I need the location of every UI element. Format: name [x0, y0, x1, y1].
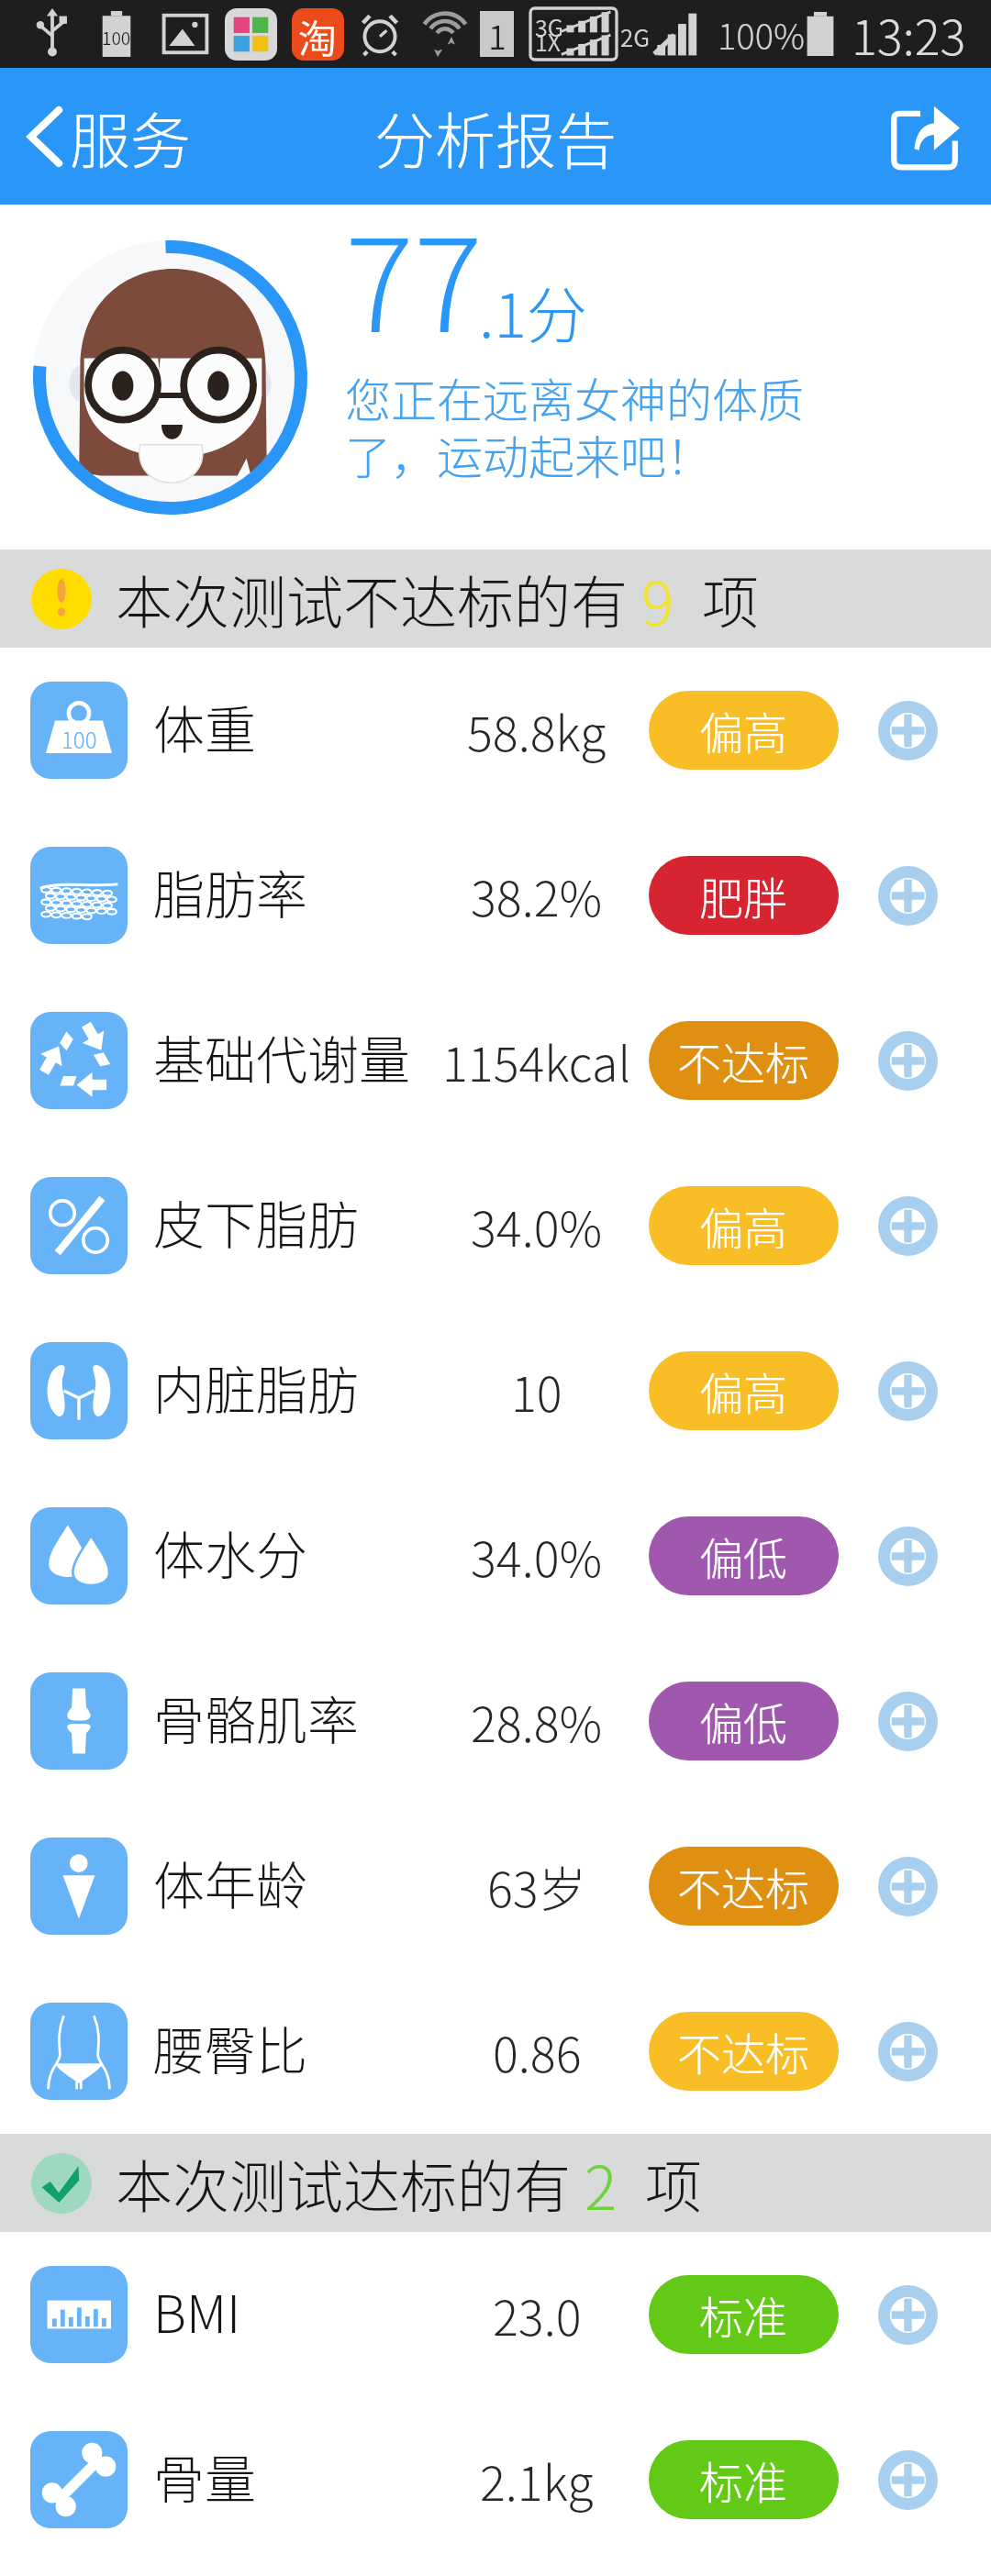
staticText: 100% — [718, 9, 806, 60]
staticText: 脂肪率 — [153, 854, 307, 928]
staticText: 28.8% — [471, 1687, 603, 1756]
staticText: 2.1kg — [480, 2446, 594, 2515]
staticText: 本次测试不达标的有 — [116, 558, 629, 640]
button[interactable]: 体年龄 — [0, 1804, 991, 1969]
staticText: 不达标 — [677, 1854, 810, 1918]
staticText: 58.8kg — [467, 696, 607, 765]
button[interactable]: Add 体水分 — [862, 1510, 954, 1603]
staticText: 0.86 — [493, 2017, 582, 2086]
staticText: 体重 — [153, 689, 256, 763]
staticText: 项 — [645, 2142, 703, 2225]
button[interactable]: Add 皮下脂肪 — [862, 1180, 954, 1272]
staticText: 服务 — [70, 93, 191, 181]
staticText: 本次测试达标的有 — [116, 2142, 572, 2225]
staticText: 分析报告 — [374, 93, 617, 181]
staticText: 2G — [620, 19, 651, 54]
button[interactable]: BMI — [0, 2232, 991, 2397]
staticText: 不达标 — [677, 1028, 810, 1093]
staticText: 体年龄 — [153, 1845, 307, 1919]
staticText: 肥胖 — [699, 863, 788, 927]
button[interactable]: Add 基础代谢量 — [862, 1015, 954, 1107]
staticText: 63岁 — [487, 1852, 586, 1921]
button[interactable]: Share — [861, 81, 991, 193]
button[interactable]: Add 骨量 — [862, 2434, 954, 2526]
button[interactable]: 腰臀比 — [0, 1969, 991, 2134]
staticText: 偏高 — [699, 698, 788, 762]
staticText: 34.0% — [471, 1192, 603, 1260]
staticText: 骨骼肌率 — [153, 1680, 359, 1754]
staticText: 100 — [102, 25, 131, 50]
staticText: 77 — [345, 183, 483, 370]
button[interactable]: Add 脂肪率 — [862, 849, 954, 942]
staticText: 项 — [702, 558, 760, 640]
staticText: 9 — [641, 555, 674, 643]
button[interactable]: Add 体重 — [862, 684, 954, 777]
staticText: 淘 — [298, 8, 338, 61]
staticText: 内脏脂肪 — [153, 1349, 359, 1424]
staticText: 标准 — [699, 2448, 788, 2512]
staticText: 标准 — [699, 2282, 788, 2347]
button[interactable]: Add 腰臀比 — [862, 2005, 954, 2098]
button[interactable]: 基础代谢量 — [0, 978, 991, 1143]
button[interactable]: 体水分 — [0, 1473, 991, 1638]
staticText: 1 — [488, 11, 507, 57]
button[interactable]: 服务 — [0, 80, 209, 194]
staticText: 34.0% — [471, 1522, 603, 1591]
button[interactable]: 内脏脂肪 — [0, 1308, 991, 1473]
staticText: 3G — [535, 10, 563, 43]
button[interactable]: 皮下脂肪 — [0, 1143, 991, 1308]
button[interactable]: Add 内脏脂肪 — [862, 1345, 954, 1438]
staticText: 偏高 — [699, 1194, 788, 1258]
staticText: 23.0 — [493, 2281, 582, 2349]
staticText: 体水分 — [153, 1515, 307, 1589]
button[interactable]: 骨骼肌率 — [0, 1638, 991, 1804]
staticText: 您正在远离女神的体质 了，运动起来吧！ — [345, 364, 804, 487]
button[interactable]: Add 骨骼肌率 — [862, 1675, 954, 1768]
button[interactable]: 脂肪率 — [0, 813, 991, 978]
button[interactable]: Add 体年龄 — [862, 1840, 954, 1933]
staticText: .1分 — [479, 267, 587, 355]
staticText: 偏低 — [699, 1689, 788, 1753]
staticText: 1X — [535, 25, 561, 58]
staticText: 不达标 — [677, 2019, 810, 2083]
staticText: 偏低 — [699, 1524, 788, 1588]
button[interactable]: 100 — [0, 648, 991, 813]
button[interactable]: 骨量 — [0, 2397, 991, 2562]
staticText: 1154kcal — [442, 1027, 631, 1095]
staticText: BMI — [153, 2273, 241, 2348]
staticText: 13:23 — [852, 0, 966, 68]
staticText: 基础代谢量 — [153, 1019, 410, 1094]
staticText: 偏高 — [699, 1359, 788, 1423]
button[interactable]: Add BMI — [862, 2269, 954, 2361]
staticText: 腰臀比 — [153, 2010, 307, 2084]
staticText: 10 — [511, 1357, 562, 1426]
staticText: 38.2% — [471, 861, 603, 930]
staticText: 皮下脂肪 — [153, 1184, 359, 1259]
staticText: 100 — [61, 723, 97, 755]
staticText: 骨量 — [153, 2438, 256, 2513]
staticText: 2 — [585, 2139, 618, 2227]
